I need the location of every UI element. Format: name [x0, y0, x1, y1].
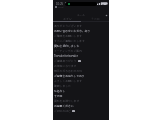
button[interactable]: ありがとうございます — [53, 23, 109, 28]
button[interactable]: お世話になります — [53, 63, 109, 68]
staticText: すぐにご連絡いたします — [54, 39, 85, 43]
staticText: ご返信をお待ちしており — [54, 74, 85, 78]
staticText: ミーティングのご案内 — [54, 49, 82, 53]
button[interactable]: すぐにご連絡いたします — [53, 38, 109, 43]
staticText: お返事ください — [54, 104, 74, 108]
button[interactable]: その他 — [53, 93, 109, 98]
staticText: 資料を添付しました — [54, 44, 80, 48]
button[interactable]: 資料をお送りします — [53, 98, 109, 103]
button[interactable]: ご対応のほど — [53, 108, 109, 113]
staticText: ご連絡ありがとう — [54, 59, 77, 63]
staticText: 資料をお送りします — [54, 99, 80, 103]
button[interactable]: その他 — [81, 17, 109, 21]
button[interactable]: ご返信をお待ちしており — [53, 73, 109, 78]
staticText: その他 — [91, 17, 100, 21]
button[interactable]: 件名なし — [53, 88, 109, 93]
staticText: メール — [77, 13, 85, 17]
button[interactable]: 明日の打ち合わせの件 — [53, 68, 109, 73]
button[interactable]: ご連絡ありがとう — [53, 58, 109, 63]
staticText: お世話になります — [54, 64, 77, 68]
staticText: 明日の打ち合わせの件 — [54, 69, 82, 73]
staticText: 10:25 — [56, 1, 64, 5]
staticText: その他 — [54, 94, 63, 98]
staticText: お問い合わせいただき、あり — [54, 29, 91, 33]
staticText: Gmail — [58, 5, 64, 8]
button[interactable]: 資料を添付しました — [53, 43, 109, 48]
button[interactable]: ミーティングのご案内 — [53, 48, 109, 53]
staticText: 確認しました — [54, 84, 71, 88]
button[interactable]: お返事ください — [53, 103, 109, 108]
staticText: Transfer for transfer — [54, 54, 78, 58]
button[interactable]: よろしくお願いします — [53, 78, 109, 83]
staticText: よろしくお願いします — [54, 79, 82, 83]
staticText: 件名なし — [54, 89, 66, 93]
staticText: ご確認をお願いします — [54, 34, 82, 38]
button[interactable]: ご確認をお願いします — [53, 33, 109, 38]
staticText: ご対応のほど — [54, 109, 71, 113]
button[interactable]: お問い合わせいただき、あり — [53, 28, 109, 33]
button[interactable]: メイン — [53, 17, 81, 21]
button[interactable]: Transfer for transfer — [53, 53, 109, 58]
button[interactable]: More options — [104, 13, 108, 17]
staticText: メイン — [63, 17, 72, 21]
button[interactable]: 確認しました — [53, 83, 109, 88]
staticText: ありがとうございます — [54, 24, 82, 28]
